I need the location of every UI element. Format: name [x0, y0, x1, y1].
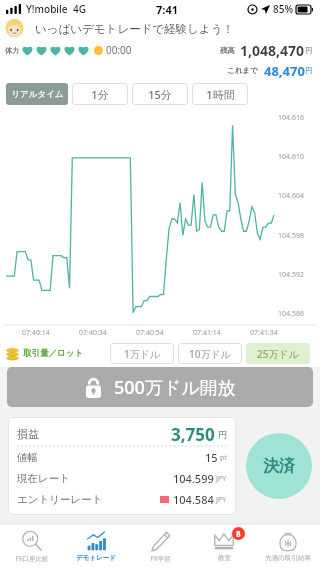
staticText: 07:40:34	[79, 328, 107, 338]
staticText: FX学習	[150, 554, 171, 563]
staticText: pt	[220, 453, 227, 463]
staticText: 15分	[148, 87, 172, 102]
staticText: 104.599	[173, 471, 214, 486]
button[interactable]: 1万ドル	[110, 343, 174, 364]
staticText: 1万ドル	[124, 347, 161, 361]
staticText: 円	[305, 66, 313, 75]
staticText: 3,750	[171, 423, 215, 446]
button[interactable]: 1分	[72, 83, 128, 105]
button[interactable]: 10万ドル	[178, 343, 242, 364]
staticText: 104.598	[278, 231, 304, 241]
button[interactable]: 15分	[132, 83, 188, 105]
staticText: 07:41:14	[193, 328, 221, 338]
button[interactable]: 先週の取引結果	[256, 524, 320, 568]
staticText: 体力	[5, 46, 19, 55]
staticText: 1時間	[206, 87, 235, 102]
staticText: 25万ドル	[257, 347, 299, 361]
staticText: 104.592	[278, 270, 304, 280]
staticText: 104.604	[278, 191, 304, 201]
staticText: 07:40:54	[136, 328, 164, 338]
staticText: 円	[305, 46, 313, 55]
staticText: 取引量／ロット	[23, 348, 84, 359]
staticText: 104.610	[278, 152, 304, 162]
button[interactable]: 500万ドル開放	[7, 367, 313, 407]
staticText: 7:41	[156, 2, 178, 17]
staticText: 損益	[17, 427, 39, 441]
button[interactable]: リアルタイム	[6, 83, 68, 105]
button[interactable]: FX口座比較	[0, 524, 64, 568]
staticText: 8	[236, 528, 241, 539]
staticText: Y!mobile	[26, 2, 68, 16]
button[interactable]: FX学習	[128, 524, 192, 568]
button[interactable]: 教室	[192, 524, 256, 568]
staticText: 48,470	[264, 62, 305, 80]
staticText: 15	[205, 450, 218, 465]
staticText: 値幅	[17, 451, 38, 464]
staticText: リアルタイム	[11, 89, 64, 100]
staticText: いっぱいデモトレードで経験しよう！	[35, 22, 235, 36]
staticText: 85%	[273, 2, 293, 16]
staticText: 07:41:34	[250, 328, 278, 338]
staticText: FX口座比較	[15, 554, 49, 563]
staticText: 1分	[91, 87, 109, 102]
staticText: 500万ドル開放	[114, 375, 236, 400]
staticText: 4G	[73, 2, 86, 16]
button[interactable]: デモトレード	[64, 524, 128, 568]
staticText: デモトレード	[76, 554, 116, 562]
staticText: 現在レート	[17, 472, 70, 485]
staticText: 104.584	[173, 492, 214, 507]
staticText: 円	[218, 429, 227, 440]
staticText: 104.586	[278, 309, 304, 319]
button[interactable]: 25万ドル	[246, 343, 310, 364]
staticText: JPY	[216, 474, 227, 484]
staticText: 先週の取引結果	[265, 554, 311, 562]
staticText: 残高	[220, 46, 235, 55]
staticText: これまで	[227, 66, 258, 75]
staticText: 1,048,470	[240, 41, 305, 60]
staticText: 教室	[218, 554, 231, 562]
button[interactable]: 決済	[246, 433, 312, 499]
staticText: 決済	[263, 456, 295, 476]
staticText: エントリーレート	[17, 493, 103, 506]
staticText: JPY	[216, 495, 227, 505]
staticText: 07:40:14	[22, 328, 50, 338]
staticText: 00:00	[106, 43, 132, 57]
staticText: 10万ドル	[189, 347, 231, 361]
button[interactable]: 1時間	[192, 83, 248, 105]
staticText: 104.616	[278, 113, 304, 123]
